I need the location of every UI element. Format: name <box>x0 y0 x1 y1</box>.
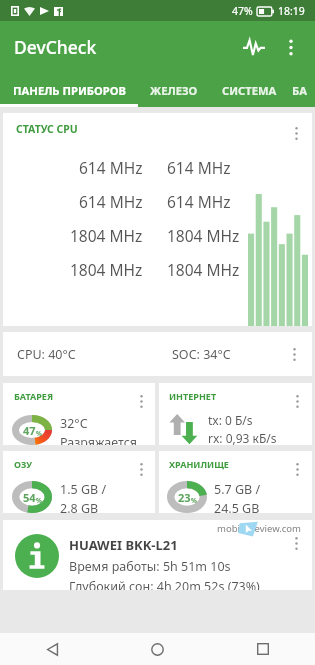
staticText: % <box>36 496 42 505</box>
button[interactable]: Home <box>105 633 210 665</box>
button[interactable]: CPU: 40°C <box>3 332 312 376</box>
button[interactable]: ОЗУ <box>3 451 155 513</box>
staticText: Время работы: 5h 51m 10s <box>69 558 231 575</box>
button[interactable]: Monitor <box>235 28 273 66</box>
button[interactable]: HUAWEI BKK-L21 <box>3 520 312 590</box>
button[interactable]: More options <box>273 29 309 65</box>
staticText: 47% <box>232 4 253 18</box>
staticText: 32°C <box>60 415 88 432</box>
button[interactable]: Recents <box>210 633 315 665</box>
button[interactable]: More options <box>286 532 306 554</box>
button[interactable]: ЖЕЛЕЗО <box>138 73 210 107</box>
staticText: 5.7 GB / <box>214 481 261 498</box>
staticText: 614 MHz <box>79 191 143 212</box>
staticText: СИСТЕМА <box>222 83 277 98</box>
staticText: 1804 MHz <box>70 259 143 280</box>
button[interactable]: Back <box>0 633 105 665</box>
staticText: 614 MHz <box>167 191 231 212</box>
staticText: rx: 0,93 кБ/s <box>208 430 277 445</box>
staticText: 614 MHz <box>79 157 143 178</box>
staticText: ЖЕЛЕЗО <box>150 83 198 98</box>
staticText: 614 MHz <box>167 157 231 178</box>
staticText: 47 <box>23 423 36 438</box>
staticText: Разряжается <box>60 434 137 445</box>
staticText: 1804 MHz <box>70 225 143 246</box>
staticText: CPU: 40°C <box>17 346 76 363</box>
staticText: 1.5 GB / <box>60 481 107 498</box>
button[interactable]: More options <box>131 390 151 412</box>
staticText: ИНТЕРНЕТ <box>169 390 217 402</box>
button[interactable]: More options <box>287 458 307 480</box>
button[interactable]: More options <box>286 122 306 144</box>
staticText: БА <box>292 83 308 98</box>
staticText: HUAWEI BKK-L21 <box>69 536 178 554</box>
staticText: % <box>191 496 197 505</box>
staticText: 1804 MHz <box>167 225 240 246</box>
staticText: % <box>36 429 42 438</box>
staticText: 24.5 GB <box>214 500 260 513</box>
staticText: 54 <box>23 490 36 505</box>
staticText: 2.8 GB <box>60 500 99 513</box>
staticText: ПАНЕЛЬ ПРИБОРОВ <box>13 83 126 98</box>
button[interactable]: БАТАРЕЯ <box>3 383 155 445</box>
staticText: ОЗУ <box>14 458 33 470</box>
staticText: DevCheck <box>14 35 97 59</box>
staticText: БАТАРЕЯ <box>14 390 54 402</box>
button[interactable]: СИСТЕМА <box>210 73 288 107</box>
staticText: SOC: 34°C <box>172 346 231 363</box>
button[interactable]: СТАТУС CPU <box>3 113 312 326</box>
button[interactable]: ИНТЕРНЕТ <box>159 383 312 445</box>
button[interactable]: ХРАНИЛИЩЕ <box>159 451 312 513</box>
staticText: 1804 MHz <box>167 259 240 280</box>
button[interactable]: More options <box>284 343 304 365</box>
button[interactable]: ПАНЕЛЬ ПРИБОРОВ <box>0 73 138 107</box>
button[interactable]: More options <box>287 390 307 412</box>
staticText: 23 <box>178 490 191 505</box>
staticText: Глубокий сон: 4h 20m 52s (73%) <box>69 578 260 590</box>
staticText: tx: 0 Б/s <box>208 412 253 428</box>
staticText: СТАТУС CPU <box>16 122 78 136</box>
button[interactable]: More options <box>131 458 151 480</box>
staticText: mobile-review.com <box>217 522 301 535</box>
staticText: 18:19 <box>278 4 305 18</box>
button[interactable]: БА <box>288 73 315 107</box>
staticText: ХРАНИЛИЩЕ <box>169 458 229 470</box>
